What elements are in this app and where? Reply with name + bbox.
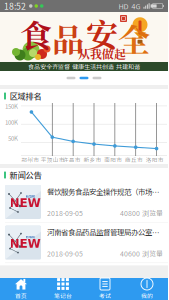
staticText: 食品安全齐监督 健康生活共创造 共建和谐 bbox=[28, 62, 140, 71]
button[interactable]: 首页 bbox=[0, 278, 42, 300]
staticText: 平顶山市 bbox=[41, 155, 65, 163]
staticText: 100K bbox=[5, 118, 18, 126]
staticText: 40800 浏览量 bbox=[120, 208, 163, 218]
staticText: 新华网 bbox=[25, 275, 34, 280]
staticText: 考试 bbox=[99, 291, 111, 300]
staticText: 40600 浏览量 bbox=[120, 249, 163, 259]
button[interactable]: 我的 bbox=[126, 278, 168, 300]
staticText: 2018-09-05 bbox=[47, 289, 83, 299]
staticText: 我的 bbox=[141, 291, 153, 300]
staticText: 洛阳市 bbox=[146, 155, 164, 163]
staticText: 区域排名 bbox=[9, 90, 41, 102]
staticText: 新华网 bbox=[25, 194, 34, 199]
staticText: 50K bbox=[8, 134, 18, 142]
staticText: 笔记台 bbox=[54, 291, 72, 300]
staticText: 商丘市 bbox=[125, 155, 143, 163]
staticText: 15870 浏览量 bbox=[120, 289, 163, 299]
button[interactable]: NEW bbox=[0, 263, 168, 300]
staticText: 新闻公告 bbox=[9, 169, 41, 181]
staticText: 从我做起 bbox=[78, 45, 126, 62]
staticText: 全 bbox=[118, 15, 150, 61]
staticText: 新乡市 bbox=[83, 155, 101, 163]
staticText: 首页 bbox=[15, 291, 27, 300]
staticText: 许昌市 bbox=[63, 155, 81, 163]
staticText: 2018-09-05 bbox=[47, 249, 83, 259]
staticText: 河南省食品药品监督管理局办公室关… bbox=[47, 227, 163, 237]
staticText: HD bbox=[118, 1, 128, 11]
staticText: NEW bbox=[9, 277, 40, 291]
button[interactable]: NEW bbox=[0, 182, 168, 223]
staticText: 品 bbox=[52, 15, 84, 61]
staticText: 南阳市 bbox=[104, 155, 122, 163]
staticText: NEW bbox=[9, 237, 40, 251]
staticText: 18:52 bbox=[4, 0, 26, 12]
staticText: 食 bbox=[20, 11, 52, 57]
staticText: 郑州市 bbox=[21, 155, 39, 163]
button[interactable]: NEW bbox=[0, 223, 168, 263]
staticText: 餐饮服务食品安全操作规范（市场监… bbox=[47, 186, 163, 197]
staticText: 150K bbox=[5, 102, 18, 110]
staticText: 新华网 bbox=[25, 235, 34, 240]
button[interactable]: 笔记台 bbox=[42, 278, 84, 300]
button[interactable]: 考试 bbox=[84, 278, 126, 300]
staticText: 2018-09-05 bbox=[47, 208, 83, 218]
staticText: 安 bbox=[86, 10, 118, 56]
staticText: 4G bbox=[131, 1, 140, 11]
staticText: NEW bbox=[9, 196, 40, 210]
